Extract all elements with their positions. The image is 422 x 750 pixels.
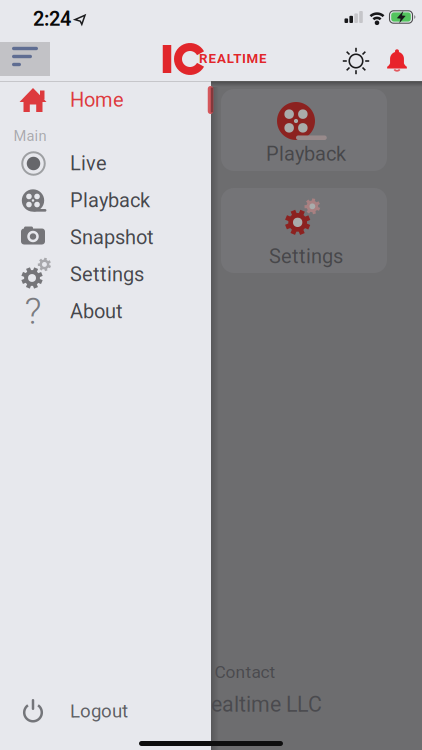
button[interactable]: Notifications bbox=[380, 44, 414, 78]
staticText: ? bbox=[24, 290, 41, 332]
button[interactable]: Playback bbox=[221, 89, 387, 171]
staticText: Playback bbox=[266, 143, 346, 165]
button[interactable]: Live bbox=[0, 145, 211, 182]
button[interactable]: Day/Night mode bbox=[339, 44, 373, 78]
staticText: Snapshot bbox=[70, 226, 154, 249]
button[interactable]: Snapshot bbox=[0, 219, 211, 256]
staticText: 2:24 bbox=[33, 8, 71, 30]
button[interactable]: Menu bbox=[0, 42, 50, 76]
staticText: Contact bbox=[214, 662, 275, 682]
button[interactable]: Home bbox=[0, 81, 211, 118]
button[interactable]: Logout bbox=[0, 692, 211, 729]
staticText: Logout bbox=[70, 700, 128, 722]
staticText: Settings bbox=[70, 263, 144, 286]
staticText: © 2021 IC Realtime LLC bbox=[98, 692, 322, 717]
staticText: Home bbox=[70, 89, 124, 111]
staticText: Live bbox=[70, 152, 107, 175]
staticText: REALTIME bbox=[199, 51, 267, 66]
staticText: Playback bbox=[70, 189, 150, 212]
staticText: About bbox=[70, 300, 123, 323]
button[interactable]: ? bbox=[0, 293, 211, 330]
staticText: Settings bbox=[269, 245, 343, 268]
button[interactable]: Settings bbox=[221, 188, 387, 273]
button[interactable]: Settings bbox=[0, 256, 211, 293]
staticText: Main bbox=[13, 128, 46, 144]
button[interactable]: Playback bbox=[0, 182, 211, 219]
